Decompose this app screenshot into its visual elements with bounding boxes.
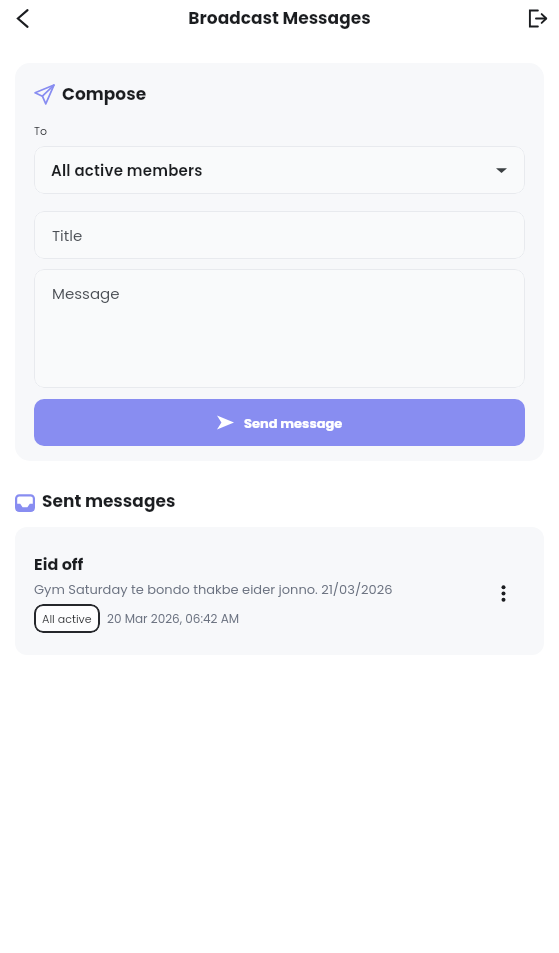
staticText: Broadcast Messages bbox=[188, 6, 371, 30]
staticText: Sent messages bbox=[42, 489, 176, 513]
staticText: Title bbox=[52, 225, 83, 246]
button[interactable]: Message bbox=[34, 269, 525, 388]
staticText: Gym Saturday te bondo thakbe eider jonno… bbox=[34, 580, 393, 598]
staticText: Eid off bbox=[34, 553, 84, 575]
staticText: 20 Mar 2026, 06:42 AM bbox=[107, 610, 240, 627]
button[interactable]: Title bbox=[34, 211, 525, 259]
button[interactable]: More options bbox=[486, 576, 520, 610]
staticText: All active bbox=[42, 611, 92, 626]
staticText: All active members bbox=[51, 160, 203, 181]
staticText: Send message bbox=[244, 414, 343, 432]
staticText: Compose bbox=[62, 82, 147, 106]
staticText: To bbox=[34, 123, 47, 138]
button[interactable]: All active members bbox=[34, 146, 525, 194]
button[interactable]: Eid off bbox=[15, 527, 544, 655]
button[interactable]: Logout bbox=[520, 1, 554, 35]
staticText: Message bbox=[52, 283, 120, 304]
button[interactable]: Send message bbox=[34, 399, 525, 446]
button[interactable]: Back bbox=[4, 0, 40, 36]
